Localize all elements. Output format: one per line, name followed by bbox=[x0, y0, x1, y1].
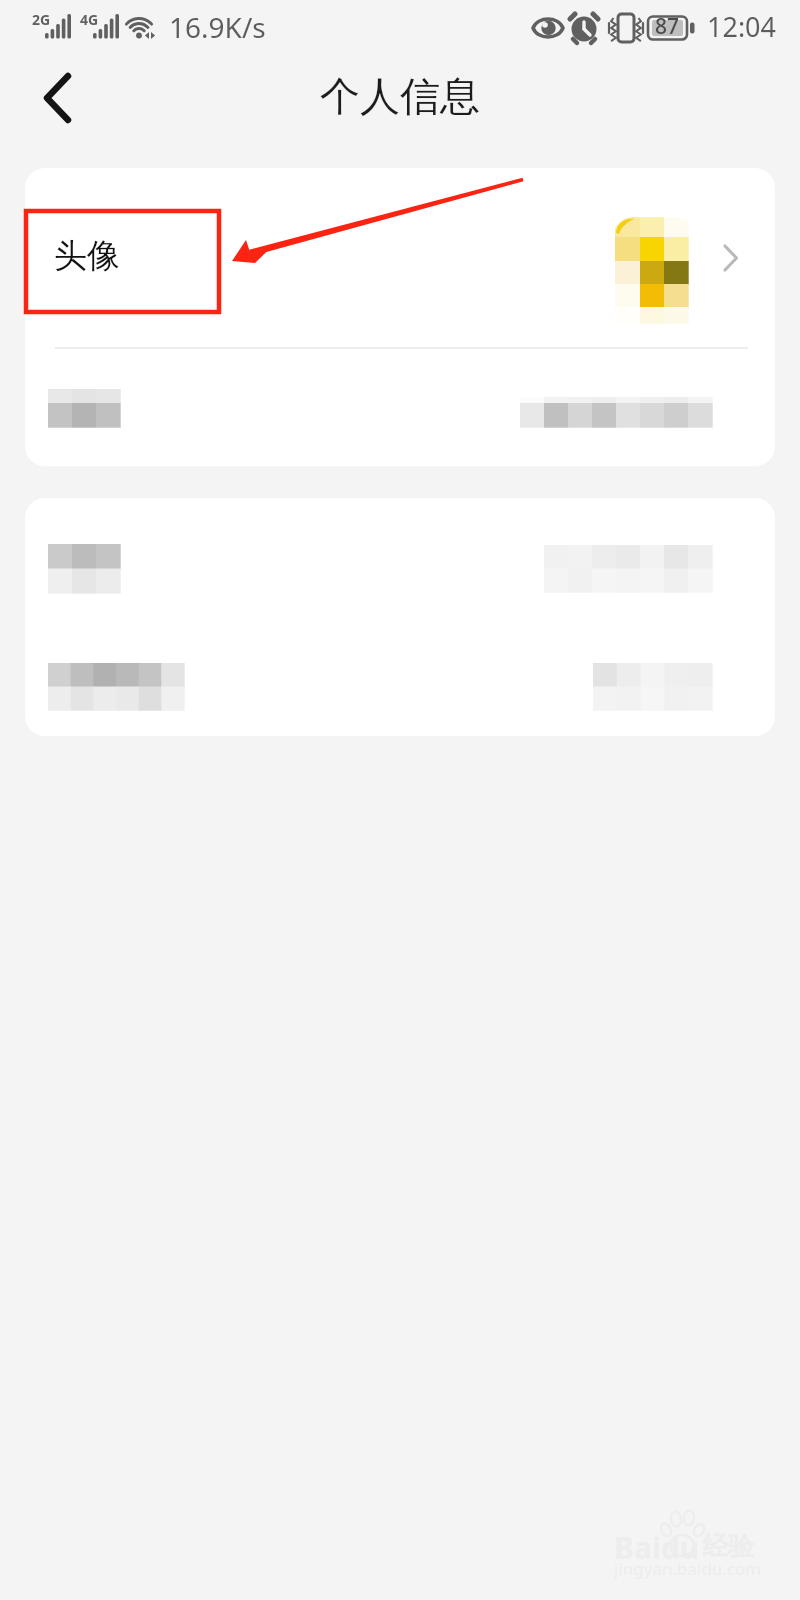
staticText: 头像 bbox=[54, 235, 120, 277]
button[interactable] bbox=[25, 498, 775, 617]
staticText: 16.9K/s bbox=[169, 8, 266, 46]
staticText: 12:04 bbox=[707, 8, 777, 45]
staticText: 4G bbox=[80, 10, 99, 29]
button[interactable]: Back bbox=[22, 60, 92, 136]
button[interactable]: Open avatar bbox=[716, 243, 746, 273]
staticText: 经验 bbox=[702, 1530, 754, 1563]
button[interactable]: 头像 bbox=[25, 168, 775, 347]
staticText: 2G bbox=[32, 10, 51, 29]
staticText: Baidu bbox=[614, 1527, 700, 1568]
button[interactable] bbox=[25, 617, 775, 736]
staticText: 87 bbox=[655, 12, 680, 41]
button[interactable] bbox=[25, 348, 775, 466]
staticText: 个人信息 bbox=[0, 71, 800, 121]
